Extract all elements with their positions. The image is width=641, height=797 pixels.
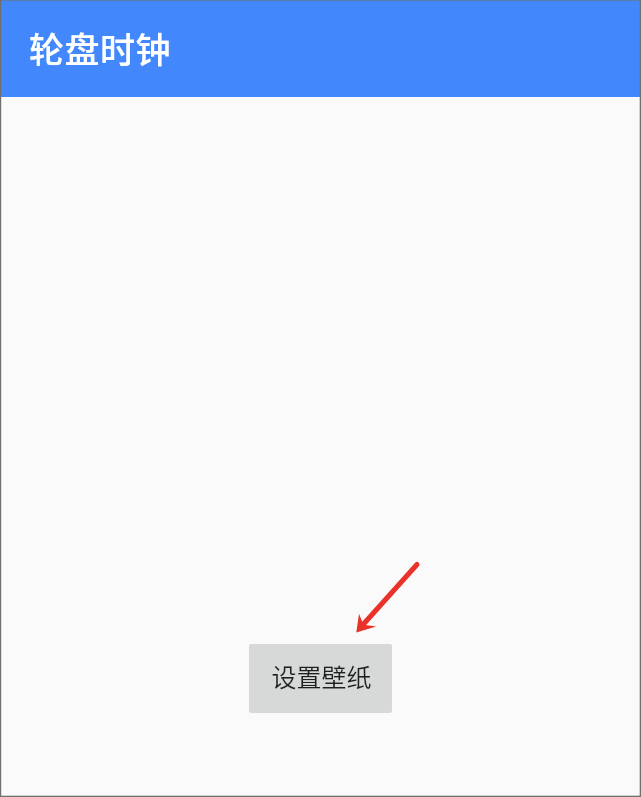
staticText: 设置壁纸	[271, 658, 372, 694]
button[interactable]: 设置壁纸	[249, 644, 392, 713]
staticText: 轮盘时钟	[29, 22, 172, 73]
other: Annotation arrow pointing at the set wal…	[0, 0, 641, 797]
